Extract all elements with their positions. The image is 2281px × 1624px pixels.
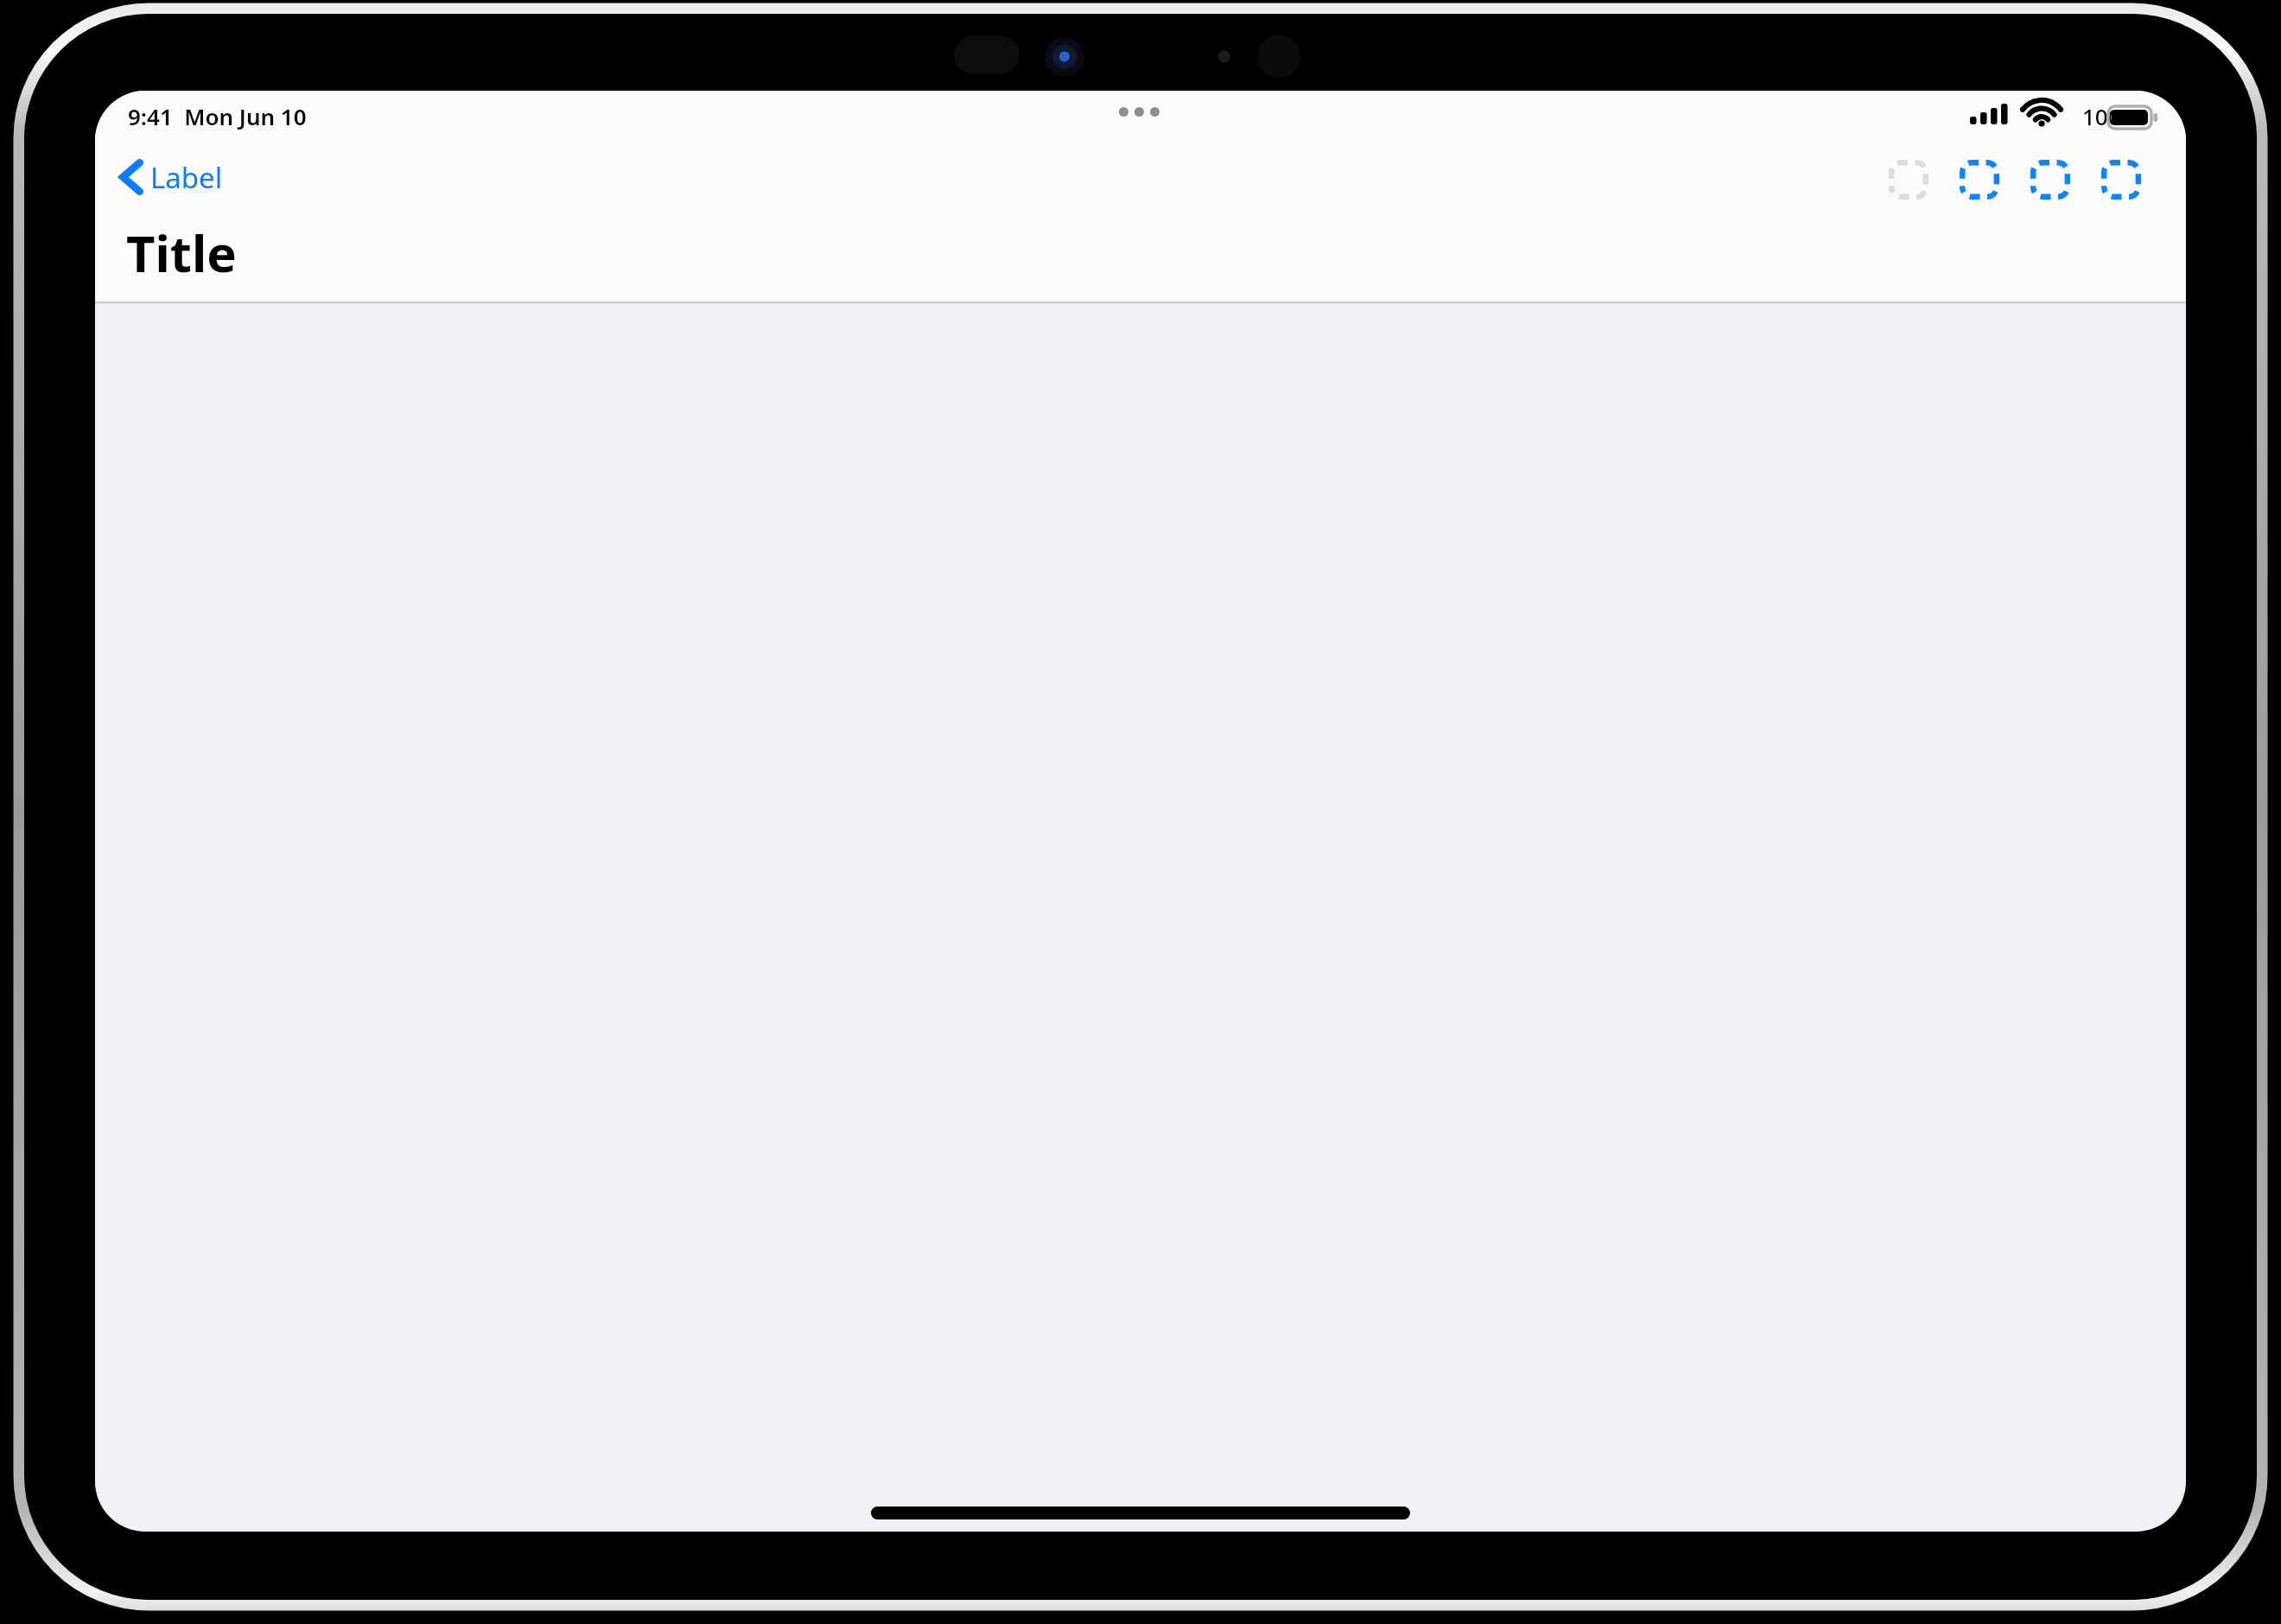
staticText: 9:41 Mon Jun 10 [128,101,307,131]
button[interactable]: Back to Label [112,153,223,201]
button[interactable]: Placeholder disabled [1873,153,1944,206]
button[interactable]: Placeholder three [2086,153,2157,206]
staticText: 100% [2082,101,2140,131]
staticText: Label [150,158,223,197]
button[interactable]: Placeholder two [2015,153,2086,206]
staticText: Title [126,219,237,287]
button[interactable]: Placeholder one [1944,153,2015,206]
